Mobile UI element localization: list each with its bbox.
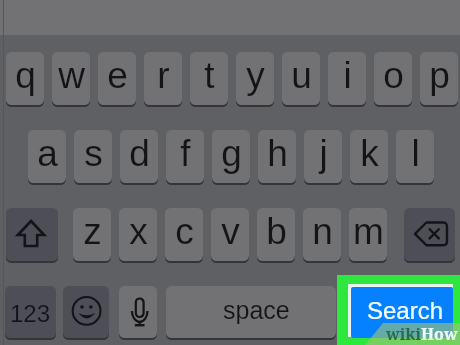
staticText: b [266, 211, 287, 252]
staticText: f [180, 133, 191, 174]
staticText: w [58, 55, 85, 96]
staticText: k [360, 133, 379, 174]
button[interactable]: a [28, 130, 66, 183]
button[interactable]: p [420, 52, 458, 105]
staticText: i [343, 55, 352, 96]
button[interactable]: g [212, 130, 250, 183]
button[interactable]: y [236, 52, 274, 105]
staticText: How [421, 323, 458, 345]
button[interactable]: j [304, 130, 342, 183]
staticText: u [291, 55, 312, 96]
staticText: r [157, 55, 170, 96]
button[interactable]: e [98, 52, 136, 105]
staticText: n [312, 211, 333, 252]
staticText: 123 [10, 300, 51, 327]
staticText: e [107, 55, 128, 96]
staticText: x [129, 211, 148, 252]
staticText: space [223, 296, 290, 324]
button[interactable]: h [258, 130, 296, 183]
button[interactable]: Emoji [63, 286, 109, 338]
button[interactable]: q [6, 52, 44, 105]
staticText: o [383, 55, 404, 96]
button[interactable]: z [73, 208, 111, 261]
staticText: z [83, 211, 102, 252]
button[interactable]: k [350, 130, 388, 183]
button[interactable]: r [144, 52, 182, 105]
button[interactable]: d [120, 130, 158, 183]
button[interactable]: t [190, 52, 228, 105]
staticText: v [221, 211, 240, 252]
staticText: h [267, 133, 288, 174]
button[interactable]: i [328, 52, 366, 105]
staticText: y [246, 55, 265, 96]
button[interactable]: u [282, 52, 320, 105]
button[interactable]: w [52, 52, 90, 105]
button[interactable]: c [165, 208, 203, 261]
staticText: wiki [386, 323, 422, 345]
button[interactable]: o [374, 52, 412, 105]
button[interactable]: f [166, 130, 204, 183]
button[interactable]: m [349, 208, 387, 261]
staticText: m [353, 211, 384, 252]
button[interactable]: Search [351, 287, 453, 338]
button[interactable]: s [74, 130, 112, 183]
button[interactable]: Shift [6, 208, 58, 261]
button[interactable]: Dictation [119, 286, 157, 338]
staticText: g [221, 133, 242, 174]
staticText: a [37, 133, 58, 174]
staticText: t [204, 55, 215, 96]
staticText: c [175, 211, 194, 252]
button[interactable]: Backspace [404, 208, 455, 261]
button[interactable]: l [396, 130, 434, 183]
staticText: p [429, 55, 450, 96]
button[interactable]: v [211, 208, 249, 261]
button[interactable]: Numbers [5, 286, 56, 338]
button[interactable]: b [257, 208, 295, 261]
staticText: Search [367, 297, 444, 324]
staticText: q [15, 55, 36, 96]
staticText: s [84, 133, 103, 174]
staticText: d [129, 133, 150, 174]
staticText: j [319, 133, 328, 174]
button[interactable]: space [166, 286, 336, 338]
button[interactable]: n [303, 208, 341, 261]
button[interactable]: x [119, 208, 157, 261]
staticText: l [411, 133, 420, 174]
